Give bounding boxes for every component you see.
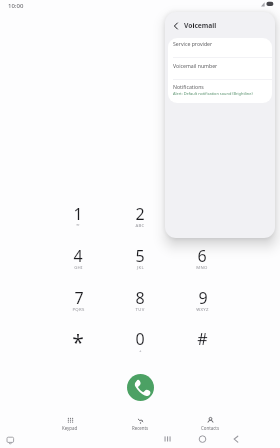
button[interactable]: Keypad [35, 411, 105, 431]
button[interactable]: Notifications [168, 80, 272, 103]
staticText: PQRS [72, 306, 85, 312]
staticText: Recents [132, 425, 149, 431]
staticText: Contacts [201, 425, 219, 431]
button[interactable]: 0 [116, 328, 164, 362]
button[interactable]: 9 [178, 287, 226, 321]
staticText: GHI [74, 264, 83, 270]
button[interactable]: 2 [116, 203, 164, 237]
staticText: 6 [197, 245, 207, 267]
staticText: TUV [135, 306, 145, 312]
staticText: * [72, 328, 84, 357]
button[interactable]: 1 [54, 203, 102, 237]
staticText: JKL [137, 264, 144, 270]
staticText: Voicemail [184, 21, 217, 30]
staticText: 4 [73, 245, 83, 267]
staticText: Service provider [173, 40, 213, 47]
staticText: Voicemail number [173, 62, 218, 69]
staticText: # [197, 328, 208, 350]
button[interactable]: Recents [105, 411, 175, 431]
staticText: + [139, 347, 142, 353]
button[interactable]: 4 [54, 245, 102, 279]
button[interactable]: 8 [116, 287, 164, 321]
staticText: 0 [135, 328, 145, 350]
button[interactable]: * [54, 328, 102, 362]
button[interactable]: 5 [116, 245, 164, 279]
staticText: 8 [135, 287, 145, 309]
staticText: Alert: Default notification sound (Brigh… [173, 91, 253, 96]
staticText: WXYZ [196, 306, 209, 312]
staticText: 5 [135, 245, 145, 267]
staticText: Keypad [62, 425, 78, 431]
staticText: MNO [196, 264, 208, 270]
button[interactable]: Call [127, 374, 154, 401]
button[interactable]: 6 [178, 245, 226, 279]
staticText: ABC [135, 222, 145, 228]
button[interactable]: Contacts [175, 411, 245, 431]
button[interactable]: 7 [54, 287, 102, 321]
button[interactable]: Voicemail number [168, 58, 272, 79]
other: Back [172, 22, 180, 30]
staticText: 2 [135, 203, 145, 225]
staticText: ∞ [76, 222, 80, 227]
staticText: Notifications [173, 83, 204, 90]
button[interactable]: Back [165, 12, 275, 38]
button[interactable]: # [178, 328, 226, 362]
staticText: 7 [74, 287, 84, 309]
staticText: 10:00 [8, 2, 24, 10]
button[interactable]: Service provider [168, 38, 272, 57]
staticText: 1 [73, 203, 83, 225]
staticText: 9 [198, 287, 208, 309]
